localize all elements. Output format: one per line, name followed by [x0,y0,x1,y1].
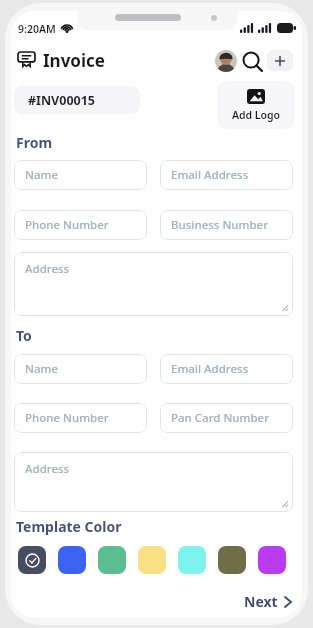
staticText: Email Address [171,167,249,183]
button[interactable]: Email Address [160,354,293,384]
button[interactable] [258,546,286,574]
button[interactable]: Name [14,160,147,190]
button[interactable]: Add Logo [217,81,295,129]
button[interactable] [242,51,263,72]
button[interactable] [58,546,86,574]
staticText: To [16,326,32,345]
staticText: #INV00015 [28,92,95,109]
button[interactable]: Name [14,354,147,384]
staticText: Invoice [43,49,105,72]
staticText: Next [244,592,278,611]
staticText: Business Number [171,217,269,233]
button[interactable]: Address [14,452,293,512]
button[interactable] [215,50,237,72]
button[interactable] [138,546,166,574]
button[interactable]: #INV00015 [14,86,140,114]
staticText: Name [25,361,58,377]
staticText: Phone Number [25,217,109,233]
staticText: Template Color [16,517,122,536]
staticText: Address [25,261,70,277]
staticText: Add Logo [217,108,295,122]
button[interactable]: Next [244,592,291,611]
staticText: 9:20AM [18,22,56,36]
button[interactable] [18,546,46,574]
staticText: Name [25,167,58,183]
staticText: Address [25,461,70,477]
button[interactable]: Email Address [160,160,293,190]
button[interactable]: Pan Card Number [160,403,293,433]
button[interactable]: Phone Number [14,403,147,433]
staticText: From [16,133,53,152]
staticText: Phone Number [25,410,109,426]
button[interactable] [178,546,206,574]
button[interactable] [218,546,246,574]
button[interactable] [267,50,293,71]
button[interactable]: Phone Number [14,210,147,240]
staticText: Pan Card Number [171,410,270,426]
button[interactable] [98,546,126,574]
button[interactable]: Address [14,252,293,316]
button[interactable]: Business Number [160,210,293,240]
staticText: Email Address [171,361,249,377]
